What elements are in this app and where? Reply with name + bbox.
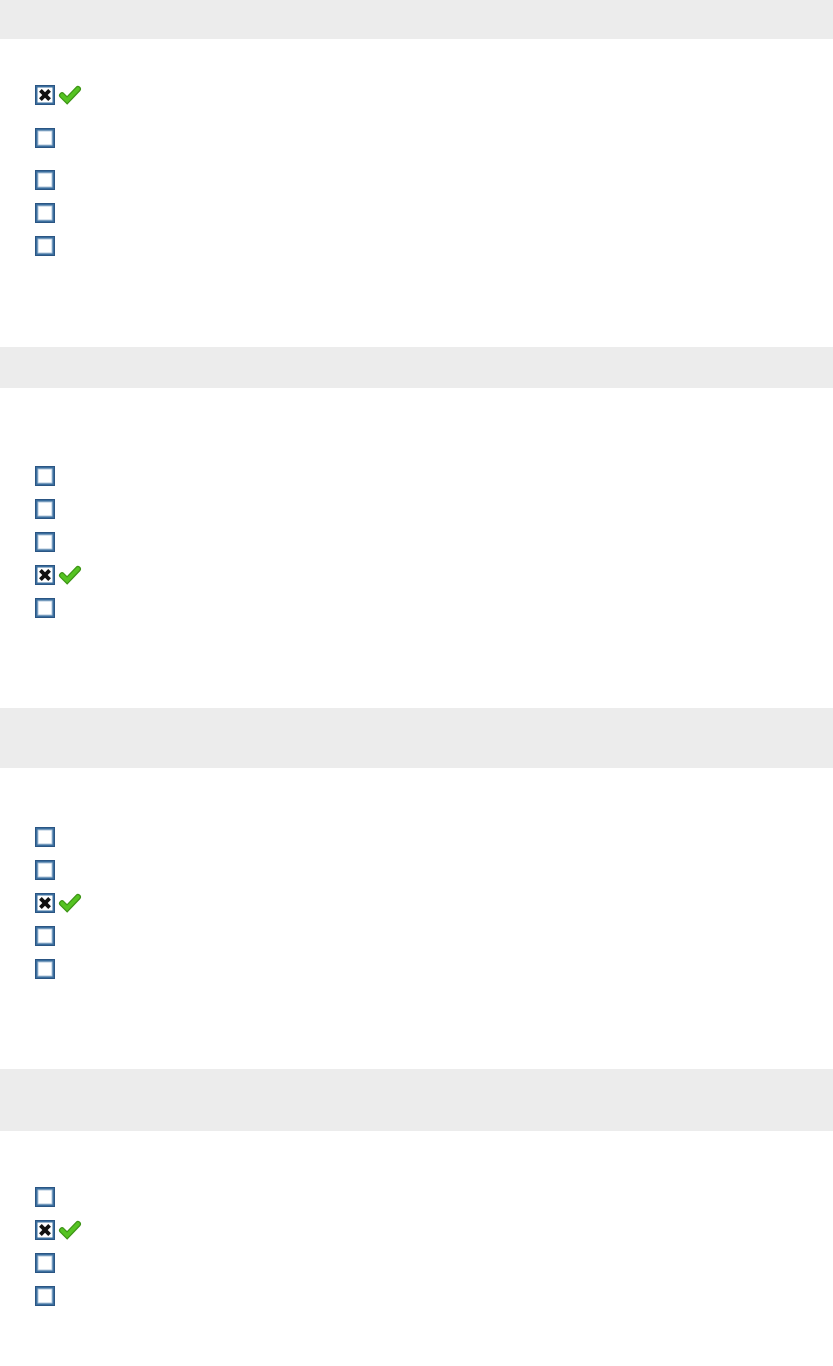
button[interactable]: Select option bbox=[0, 236, 833, 256]
button[interactable]: Select option bbox=[0, 128, 833, 148]
button[interactable]: Select option bbox=[0, 926, 833, 946]
button[interactable]: Selected option bbox=[35, 85, 55, 105]
button[interactable]: Select option bbox=[35, 827, 55, 847]
button[interactable]: Select option bbox=[35, 1286, 55, 1306]
button[interactable]: Select option bbox=[0, 860, 833, 880]
button[interactable]: Selected option bbox=[0, 893, 833, 913]
button[interactable]: Select option bbox=[0, 1286, 833, 1306]
button[interactable]: Selected option bbox=[35, 893, 55, 913]
button[interactable]: Select option bbox=[35, 860, 55, 880]
other: Correct bbox=[61, 566, 79, 584]
button[interactable]: Select option bbox=[35, 128, 55, 148]
button[interactable]: Select option bbox=[0, 466, 833, 486]
button[interactable]: Selected option bbox=[0, 85, 833, 105]
button[interactable]: Selected option bbox=[0, 565, 833, 585]
button[interactable]: Select option bbox=[0, 598, 833, 618]
button[interactable]: Select option bbox=[35, 532, 55, 552]
button[interactable]: Select option bbox=[35, 170, 55, 190]
button[interactable]: Select option bbox=[35, 203, 55, 223]
button[interactable]: Select option bbox=[35, 499, 55, 519]
button[interactable]: Select option bbox=[0, 959, 833, 979]
other: Correct bbox=[61, 86, 79, 104]
other: Correct bbox=[61, 894, 79, 912]
other: Correct bbox=[61, 1221, 79, 1239]
button[interactable]: Select option bbox=[0, 170, 833, 190]
button[interactable]: Select option bbox=[0, 499, 833, 519]
button[interactable]: Select option bbox=[35, 926, 55, 946]
button[interactable]: Select option bbox=[35, 1253, 55, 1273]
button[interactable]: Select option bbox=[0, 827, 833, 847]
button[interactable]: Select option bbox=[0, 1253, 833, 1273]
button[interactable]: Select option bbox=[35, 1187, 55, 1207]
button[interactable]: Select option bbox=[0, 532, 833, 552]
button[interactable]: Select option bbox=[0, 1187, 833, 1207]
button[interactable]: Select option bbox=[0, 203, 833, 223]
button[interactable]: Select option bbox=[35, 236, 55, 256]
button[interactable]: Select option bbox=[35, 959, 55, 979]
button[interactable]: Select option bbox=[35, 466, 55, 486]
button[interactable]: Select option bbox=[35, 598, 55, 618]
button[interactable]: Selected option bbox=[35, 565, 55, 585]
button[interactable]: Selected option bbox=[35, 1220, 55, 1240]
button[interactable]: Selected option bbox=[0, 1220, 833, 1240]
